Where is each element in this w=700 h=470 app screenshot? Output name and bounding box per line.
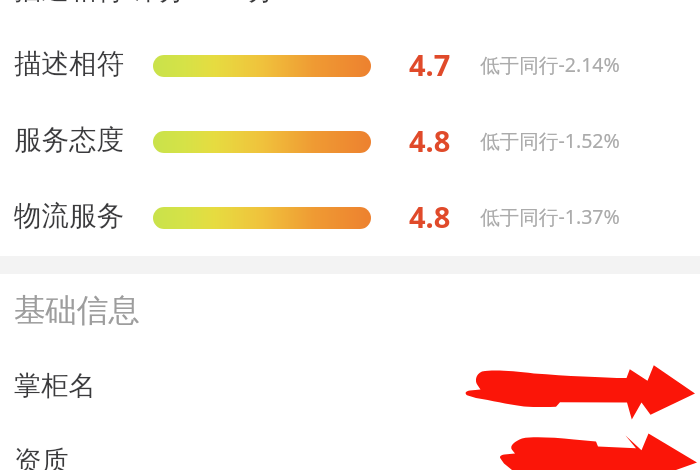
button[interactable]: 物流服务 <box>0 178 700 254</box>
staticText: 描述相符 评分 4.77分 <box>14 0 276 8</box>
button[interactable]: 描述相符 评分 4.77分 <box>14 0 276 8</box>
button[interactable]: 描述相符 <box>0 26 700 102</box>
staticText: 低于同行-1.37% <box>480 203 620 230</box>
staticText: 基础信息 <box>14 291 140 331</box>
staticText: 低于同行-2.14% <box>480 51 620 78</box>
staticText: 低于同行-1.52% <box>480 127 620 154</box>
button[interactable]: 资质 <box>0 423 700 470</box>
staticText: 描述相符 <box>14 47 124 82</box>
staticText: 4.8 <box>409 121 451 160</box>
staticText: 掌柜名 <box>14 369 96 403</box>
staticText: 服务态度 <box>14 123 124 158</box>
staticText: 物流服务 <box>14 199 124 234</box>
staticText: 资质 <box>14 444 69 470</box>
button[interactable]: 服务态度 <box>0 102 700 178</box>
staticText: 4.8 <box>409 197 451 236</box>
staticText: 4.7 <box>409 45 451 84</box>
button[interactable]: 掌柜名 <box>0 348 700 423</box>
